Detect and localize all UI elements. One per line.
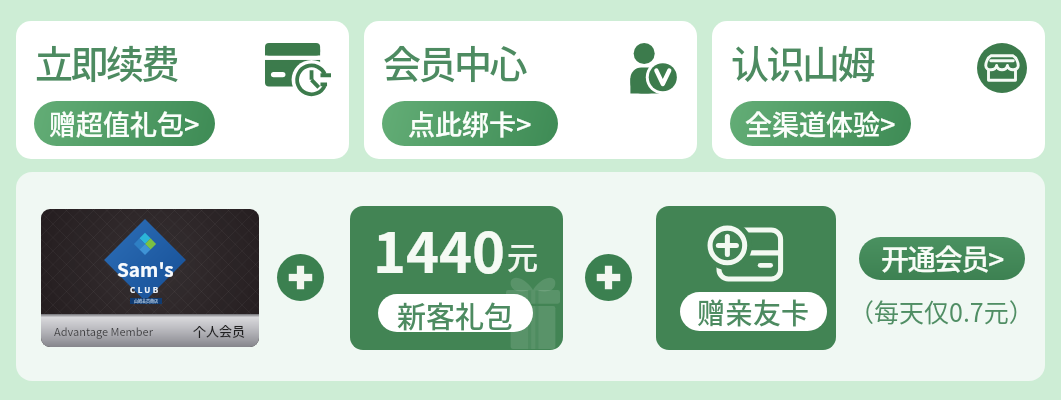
button[interactable]: 开通会员> xyxy=(859,237,1025,280)
other: About Sam's xyxy=(977,43,1027,93)
button[interactable]: 全渠道体验> xyxy=(730,101,911,146)
button[interactable]: 赠亲友卡 xyxy=(680,292,827,331)
staticText: 认识山姆 xyxy=(731,34,874,89)
staticText: 立即续费 xyxy=(35,34,178,89)
staticText: 新客礼包 xyxy=(397,294,514,332)
button[interactable]: Sam's xyxy=(41,209,259,347)
staticText: Advantage Member xyxy=(54,323,153,339)
other: Member centre xyxy=(625,43,679,93)
staticText: 点此绑卡> xyxy=(408,104,532,143)
staticText: 1440 xyxy=(373,208,506,289)
other: Renew xyxy=(265,43,331,96)
button[interactable]: 赠超值礼包> xyxy=(34,101,215,146)
button[interactable]: 立即续费 xyxy=(16,21,349,159)
staticText: 赠超值礼包> xyxy=(49,104,200,143)
button[interactable]: 1440 xyxy=(350,206,563,350)
other: Gift a friend card xyxy=(708,227,784,282)
staticText: Sam's xyxy=(117,255,174,283)
staticText: 赠亲友卡 xyxy=(697,292,810,331)
staticText: 个人会员 xyxy=(193,321,246,340)
staticText: （每天仅0.7元） xyxy=(849,293,1034,329)
other: Plus xyxy=(585,254,632,301)
staticText: 元 xyxy=(507,233,538,278)
other: Plus xyxy=(277,254,324,301)
staticText: 全渠道体验> xyxy=(745,104,896,143)
button[interactable]: 认识山姆 xyxy=(712,21,1045,159)
button[interactable]: 点此绑卡> xyxy=(382,101,558,146)
button[interactable]: 会员中心 xyxy=(364,21,697,159)
staticText: 会员中心 xyxy=(383,34,526,89)
staticText: 开通会员> xyxy=(881,238,1003,279)
button[interactable]: Gift a friend card xyxy=(656,206,836,350)
staticText: 山姆会员商店 xyxy=(134,298,158,304)
button[interactable]: 新客礼包 xyxy=(378,294,533,332)
staticText: CLUB xyxy=(130,284,161,296)
